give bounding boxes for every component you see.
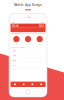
button[interactable]: Tab <box>28 82 37 87</box>
staticText: 9:41 <box>12 21 15 23</box>
staticText: List item <box>12 55 16 57</box>
staticText: Mobile App Design <box>14 3 42 7</box>
staticText: RECENTLY VIEWED <box>12 47 25 48</box>
staticText: Label <box>38 43 42 45</box>
staticText: Label <box>26 43 30 45</box>
button[interactable]: List item <box>10 49 45 53</box>
button[interactable]: Label <box>34 36 45 45</box>
staticText: List item <box>12 50 16 52</box>
button[interactable]: Label <box>10 36 22 45</box>
button[interactable]: List item <box>10 53 45 58</box>
staticText: List item <box>12 64 16 66</box>
staticText: 100% <box>40 21 44 23</box>
staticText: Edit <box>39 24 44 27</box>
staticText: CATEGORIES <box>12 32 21 34</box>
button[interactable]: List item <box>10 58 45 63</box>
staticText: List item <box>12 60 16 61</box>
button[interactable]: Back <box>10 24 19 28</box>
button[interactable]: List item <box>10 63 45 67</box>
button[interactable]: Edit <box>38 24 45 28</box>
staticText: Back <box>12 24 18 27</box>
staticText: MORE <box>12 68 16 70</box>
button[interactable]: Label <box>22 36 34 45</box>
button[interactable]: Tab <box>10 82 19 87</box>
button[interactable]: Tab <box>19 82 28 87</box>
button[interactable]: Tab <box>37 82 46 87</box>
